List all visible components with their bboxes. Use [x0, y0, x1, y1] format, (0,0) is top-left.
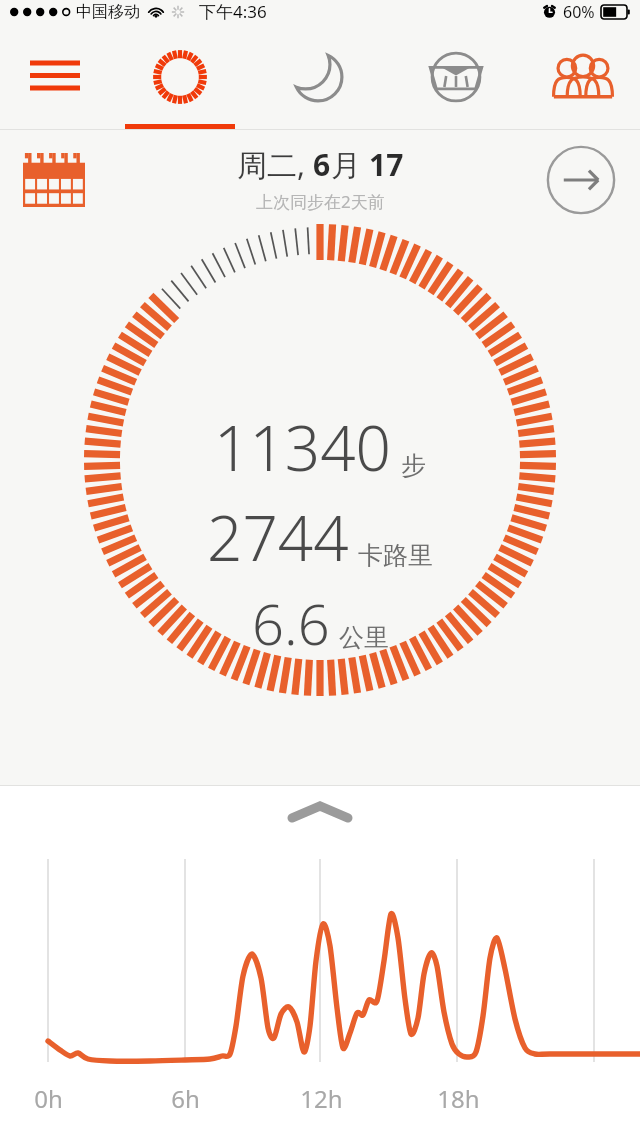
staticText: 卡路里: [358, 540, 433, 571]
staticText: 月: [331, 144, 369, 185]
staticText: 公里: [339, 622, 389, 653]
staticText: 周二,: [237, 144, 313, 185]
staticText: 0h: [34, 1082, 63, 1115]
staticText: 60%: [563, 1, 595, 23]
staticText: 上次同步在2天前: [256, 190, 385, 213]
staticText: 中国移动: [76, 2, 140, 22]
staticText: 12h: [300, 1082, 343, 1115]
button[interactable]: Sleep: [249, 34, 387, 129]
button[interactable]: Friends: [525, 34, 640, 129]
staticText: 11340: [214, 405, 392, 489]
staticText: 6: [313, 144, 331, 185]
staticText: 步: [401, 450, 426, 481]
button[interactable]: Calendar: [18, 145, 90, 215]
button[interactable]: Activity: [110, 34, 249, 129]
button[interactable]: 11340: [0, 230, 640, 785]
staticText: 18h: [437, 1082, 480, 1115]
staticText: 17: [369, 144, 404, 185]
staticText: 6.6: [252, 585, 330, 661]
button[interactable]: Menu: [0, 34, 110, 129]
staticText: 6h: [171, 1082, 200, 1115]
staticText: 2744: [207, 495, 349, 579]
button[interactable]: Next day: [544, 143, 618, 217]
button[interactable]: 0h: [0, 786, 640, 1136]
staticText: 下午4:36: [199, 0, 267, 23]
button[interactable]: Nutrition: [387, 34, 525, 129]
